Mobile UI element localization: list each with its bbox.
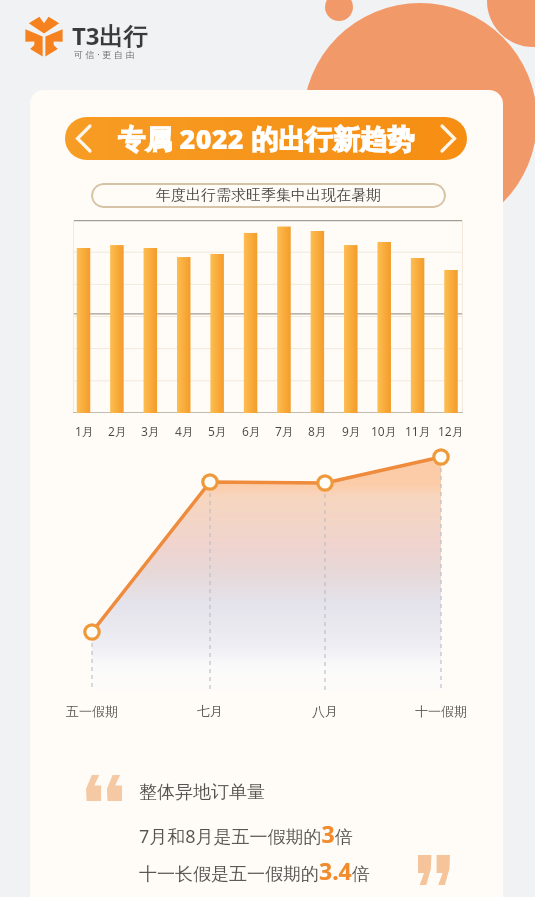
staticText: 8月 (308, 423, 327, 439)
staticText: 七月 (197, 703, 223, 719)
staticText: 12月 (438, 423, 464, 439)
staticText: 7月和8月是五一假期的3倍 (139, 818, 353, 849)
staticText: 6月 (242, 423, 261, 439)
staticText: 3月 (141, 423, 160, 439)
staticText: 八月 (312, 703, 338, 719)
staticText: 可信·更自由 (74, 48, 138, 60)
staticText: 7月 (275, 423, 294, 439)
staticText: 十一长假是五一假期的3.4倍 (139, 855, 370, 886)
staticText: 五一假期 (66, 703, 118, 719)
button[interactable]: T3出行 (14, 8, 184, 68)
staticText: 2月 (108, 423, 127, 439)
staticText: 专属 2022 的出行新趋势 (118, 120, 415, 157)
button[interactable]: 专属 2022 的出行新趋势 (65, 117, 467, 160)
staticText: 5月 (208, 423, 227, 439)
staticText: 1月 (75, 423, 94, 439)
staticText: 11月 (405, 423, 431, 439)
staticText: 十一假期 (415, 703, 467, 719)
staticText: 整体异地订单量 (139, 781, 265, 804)
staticText: 10月 (371, 423, 397, 439)
staticText: 年度出行需求旺季集中出现在暑期 (156, 186, 381, 205)
staticText: 9月 (342, 423, 361, 439)
staticText: T3出行 (72, 19, 148, 52)
staticText: 4月 (175, 423, 194, 439)
